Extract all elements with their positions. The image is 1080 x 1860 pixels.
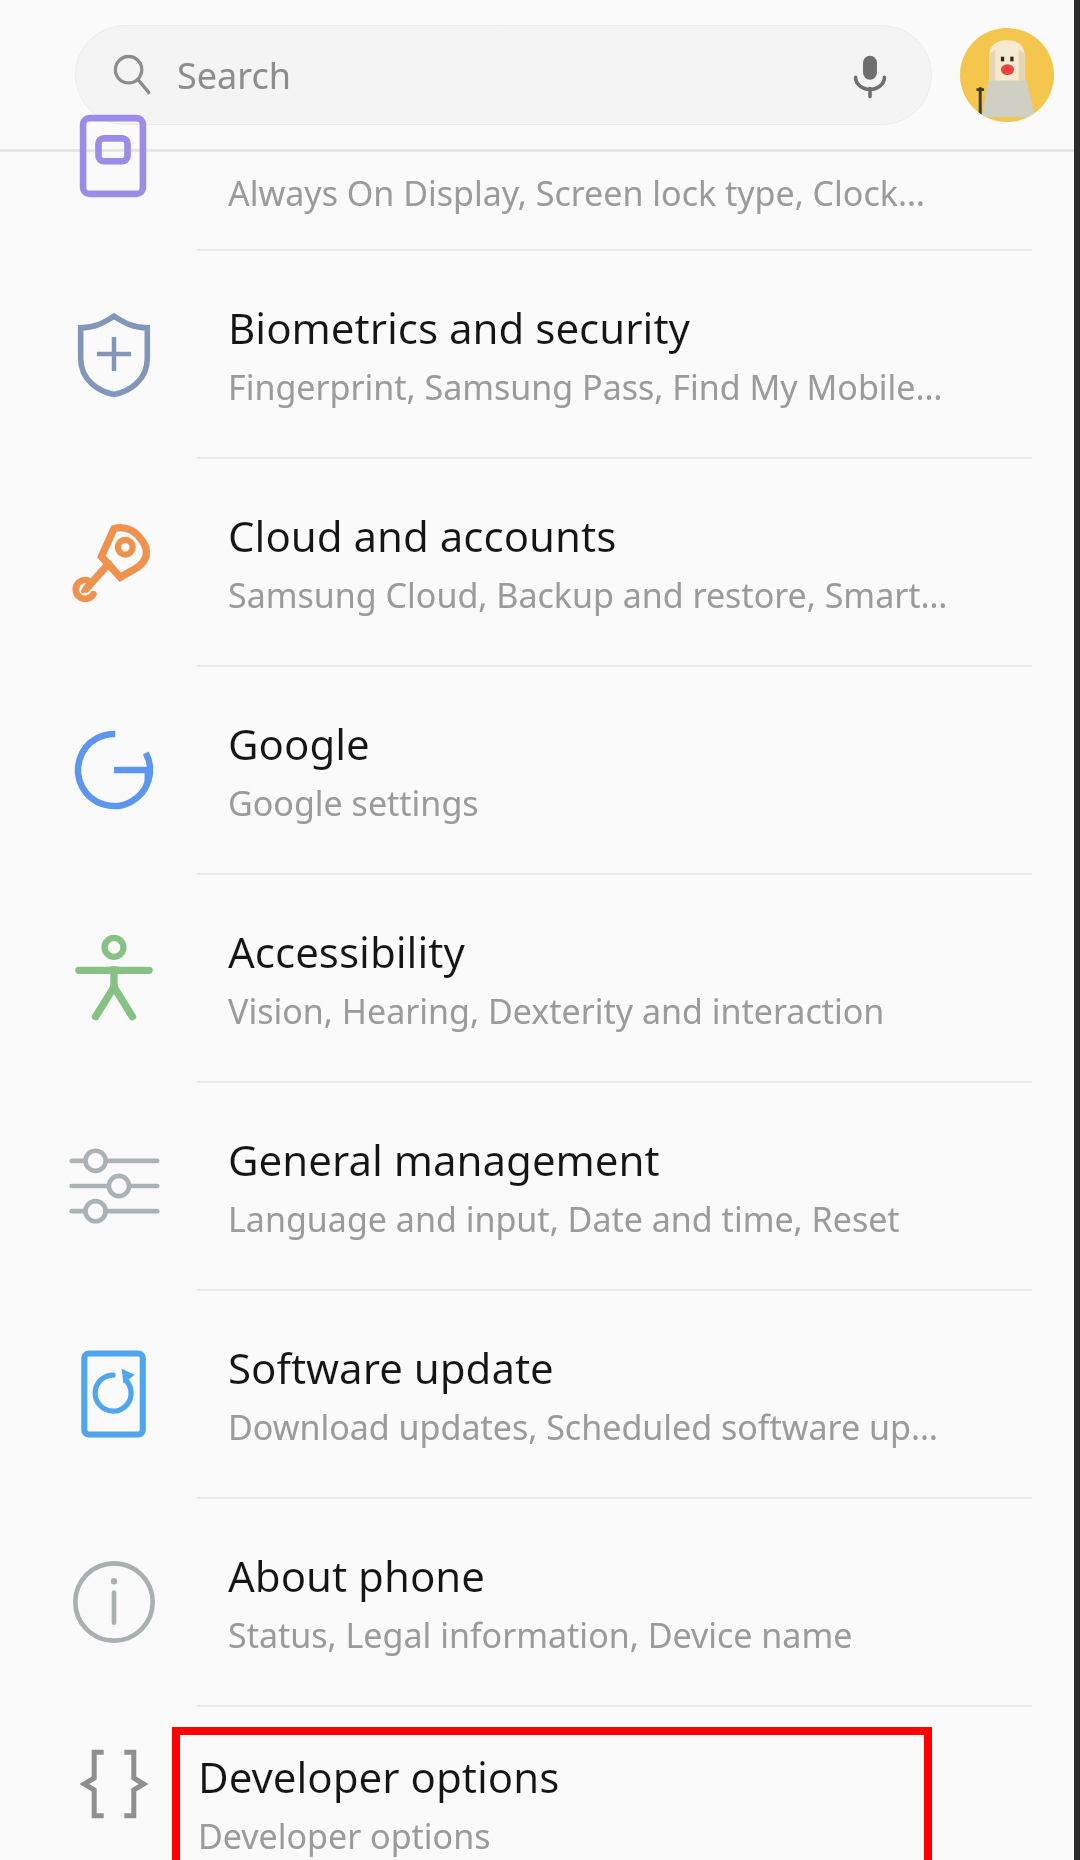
staticText: Always On Display, Screen lock type, Clo… (228, 170, 925, 216)
staticText: Cloud and accounts (228, 507, 617, 564)
staticText: Biometrics and security (228, 299, 691, 356)
staticText: General management (228, 1131, 660, 1188)
staticText: Google settings (228, 780, 479, 826)
button[interactable]: Developer options (0, 1707, 1080, 1860)
staticText: Developer options (198, 1813, 491, 1859)
staticText: Samsung Cloud, Backup and restore, Smart… (228, 572, 948, 618)
button[interactable]: Search (75, 25, 932, 125)
button[interactable]: Voice search (842, 47, 898, 103)
staticText: Vision, Hearing, Dexterity and interacti… (228, 988, 885, 1034)
button[interactable]: Google (0, 667, 1080, 873)
button[interactable]: About phone (0, 1499, 1080, 1705)
staticText: Search (177, 51, 291, 100)
staticText: Status, Legal information, Device name (228, 1612, 853, 1658)
staticText: About phone (228, 1547, 485, 1604)
button[interactable]: Cloud and accounts (0, 459, 1080, 665)
button[interactable]: Always On Display, Screen lock type, Clo… (0, 152, 1080, 249)
staticText: Developer options (198, 1748, 560, 1805)
staticText: Fingerprint, Samsung Pass, Find My Mobil… (228, 364, 943, 410)
button[interactable]: Account (960, 28, 1054, 122)
staticText: Software update (228, 1339, 554, 1396)
button[interactable]: Biometrics and security (0, 251, 1080, 457)
staticText: Language and input, Date and time, Reset (228, 1196, 900, 1242)
button[interactable]: Software update (0, 1291, 1080, 1497)
staticText: Accessibility (228, 923, 465, 980)
staticText: Download updates, Scheduled software up… (228, 1404, 938, 1450)
button[interactable]: General management (0, 1083, 1080, 1289)
staticText: Google (228, 715, 370, 772)
button[interactable]: Accessibility (0, 875, 1080, 1081)
